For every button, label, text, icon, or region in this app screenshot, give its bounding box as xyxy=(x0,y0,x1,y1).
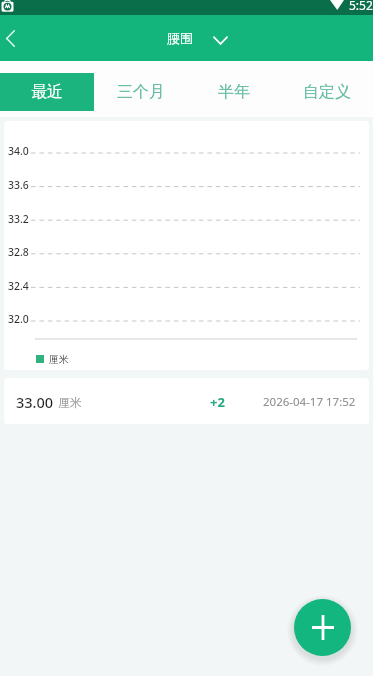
staticText: +2 xyxy=(210,393,225,411)
button[interactable]: 最近 xyxy=(0,73,94,111)
staticText: 33.2 xyxy=(8,212,29,226)
staticText: 32.0 xyxy=(8,312,29,326)
staticText: 厘米 xyxy=(49,353,69,366)
staticText: 5:52 xyxy=(349,0,373,12)
staticText: 34.0 xyxy=(8,144,29,158)
button[interactable]: Back xyxy=(0,15,20,61)
staticText: 厘米 xyxy=(58,395,82,410)
staticText: 半年 xyxy=(218,82,250,102)
button[interactable]: Add xyxy=(294,599,351,656)
button[interactable]: 半年 xyxy=(187,73,280,111)
staticText: 三个月 xyxy=(117,82,165,102)
staticText: 腰围 xyxy=(167,30,193,46)
button[interactable]: 腰围 xyxy=(167,30,228,46)
staticText: 2026-04-17 17:52 xyxy=(263,394,356,410)
button[interactable]: 自定义 xyxy=(280,73,373,111)
staticText: 33.00 xyxy=(16,392,54,412)
staticText: 32.8 xyxy=(8,245,29,259)
button[interactable]: 三个月 xyxy=(94,73,187,111)
staticText: 33.6 xyxy=(8,178,29,192)
staticText: 32.4 xyxy=(8,279,29,293)
staticText: 最近 xyxy=(31,82,63,102)
staticText: 自定义 xyxy=(303,82,351,102)
button[interactable]: 33.00 xyxy=(4,378,369,424)
